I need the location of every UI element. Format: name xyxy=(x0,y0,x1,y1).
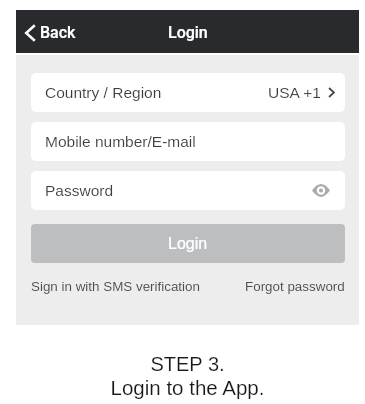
staticText: Mobile number/E-mail xyxy=(45,133,196,150)
staticText: Login to the App. xyxy=(16,376,359,399)
button[interactable]: Back xyxy=(16,16,86,48)
button[interactable]: Password xyxy=(31,171,345,210)
button[interactable]: Country / Region xyxy=(31,73,345,112)
staticText: Country / Region xyxy=(45,84,162,101)
button[interactable]: Mobile number/E-mail xyxy=(31,122,345,161)
staticText: Login xyxy=(168,235,208,253)
button[interactable]: Sign in with SMS verification xyxy=(31,279,200,294)
staticText: Back xyxy=(40,23,76,42)
button[interactable]: Show password xyxy=(312,184,330,197)
staticText: Password xyxy=(45,182,114,199)
button[interactable]: Forgot password xyxy=(245,279,345,294)
button[interactable]: Login xyxy=(31,224,345,263)
staticText: USA +1 xyxy=(268,84,321,101)
staticText: Login xyxy=(168,23,208,42)
staticText: STEP 3. xyxy=(16,353,359,375)
